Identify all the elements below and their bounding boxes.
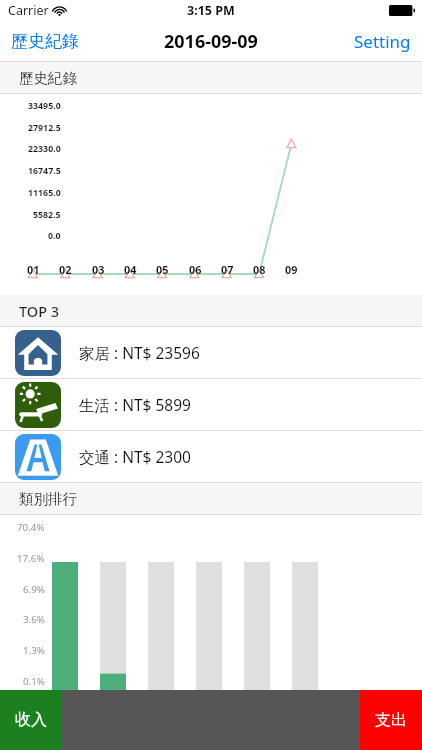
staticText: 02 [59, 262, 72, 277]
staticText: 生活 : NT$ 5899 [79, 394, 191, 415]
staticText: 09 [285, 262, 298, 277]
staticText: 17.6% [17, 552, 45, 565]
button[interactable]: 收入 [0, 690, 62, 750]
staticText: 70.4% [17, 521, 45, 534]
staticText: 05 [156, 262, 169, 277]
button[interactable]: 歷史紀錄 [0, 24, 90, 59]
staticText: Carrier [8, 2, 49, 19]
staticText: 0.1% [23, 675, 45, 688]
staticText: 08 [253, 262, 266, 277]
staticText: 5582.5 [33, 209, 61, 221]
staticText: 2016-09-09 [164, 29, 258, 54]
staticText: 11165.0 [28, 187, 61, 199]
button[interactable]: Life category [0, 379, 422, 430]
other: Transport category [15, 434, 61, 480]
other: Home category [15, 330, 61, 376]
button[interactable]: Home category [0, 327, 422, 378]
staticText: 3:15 PM [187, 2, 235, 19]
staticText: 1.3% [23, 644, 45, 657]
staticText: 3.6% [23, 613, 45, 626]
staticText: 歷史紀錄 [11, 31, 79, 52]
staticText: 07 [221, 262, 234, 277]
staticText: 類別排行 [19, 490, 77, 508]
staticText: Setting [354, 30, 411, 53]
staticText: 0.0 [48, 230, 61, 242]
staticText: 06 [189, 262, 202, 277]
other: Life category [15, 382, 61, 428]
staticText: 歷史紀錄 [19, 69, 77, 87]
staticText: 收入 [15, 710, 47, 730]
staticText: 03 [92, 262, 105, 277]
button[interactable]: 支出 [360, 690, 422, 750]
staticText: 04 [124, 262, 137, 277]
button[interactable]: Setting [343, 23, 422, 60]
staticText: 6.9% [23, 583, 45, 596]
staticText: 22330.0 [28, 143, 61, 155]
staticText: 33495.0 [28, 100, 61, 112]
staticText: 家居 : NT$ 23596 [79, 342, 200, 363]
button[interactable]: Transport category [0, 431, 422, 482]
staticText: 16747.5 [28, 165, 61, 177]
staticText: 支出 [375, 710, 407, 730]
staticText: 27912.5 [28, 122, 61, 134]
staticText: 交通 : NT$ 2300 [79, 446, 191, 467]
staticText: 01 [27, 262, 40, 277]
staticText: TOP 3 [19, 301, 60, 321]
